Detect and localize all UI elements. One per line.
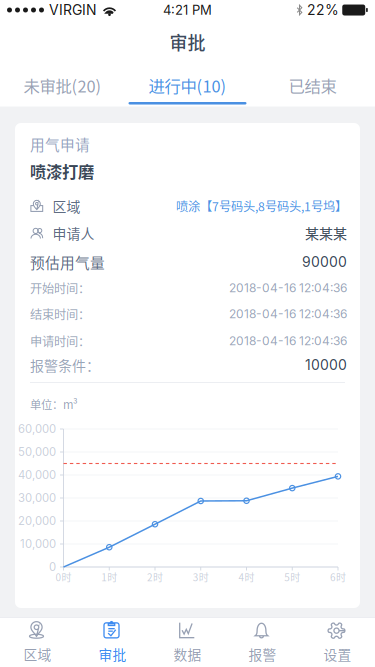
staticText: 3时 — [193, 570, 209, 584]
staticText: 结束时间： — [30, 305, 90, 323]
staticText: 20,000 — [18, 514, 56, 528]
staticText: 60,000 — [18, 422, 56, 436]
staticText: 开始时间： — [30, 279, 90, 297]
staticText: 90000 — [302, 253, 347, 270]
staticText: 申请人 — [52, 223, 94, 243]
button[interactable]: 设置 — [300, 618, 375, 667]
staticText: 单位：m³ — [30, 396, 78, 412]
staticText: 40,000 — [18, 468, 56, 482]
staticText: 设置 — [323, 644, 351, 664]
staticText: 10000 — [305, 356, 347, 373]
staticText: 0 — [49, 560, 56, 574]
staticText: 数据 — [173, 644, 201, 664]
button[interactable]: 数据 — [150, 618, 225, 667]
staticText: 报警 — [248, 644, 276, 664]
button[interactable]: 审批 — [75, 618, 150, 667]
staticText: 用气申请 — [30, 133, 90, 155]
staticText: 2018-04-16 12:04:36 — [229, 334, 347, 348]
staticText: 某某某 — [305, 223, 347, 243]
staticText: 未审批(20) — [23, 73, 101, 97]
staticText: 已结束 — [288, 73, 336, 97]
staticText: VIRGIN — [49, 1, 97, 18]
staticText: 审批 — [98, 644, 126, 664]
staticText: 审批 — [169, 29, 205, 55]
staticText: 2时 — [147, 570, 163, 584]
staticText: 报警条件： — [30, 355, 100, 375]
staticText: 50,000 — [18, 445, 56, 459]
staticText: 喷涂【7号码头,8号码头,1号坞】 — [176, 197, 347, 215]
staticText: 喷漆打磨 — [30, 159, 94, 183]
staticText: 6时 — [330, 570, 346, 584]
staticText: 区域 — [52, 196, 80, 216]
button[interactable]: 已结束 — [250, 64, 375, 106]
staticText: 30,000 — [18, 491, 56, 505]
staticText: 2018-04-16 12:04:36 — [229, 281, 347, 295]
staticText: 预估用气量 — [30, 251, 105, 273]
staticText: 2018-04-16 12:04:36 — [229, 307, 347, 321]
button[interactable]: 未审批(20) — [0, 64, 125, 106]
button[interactable]: 进行中(10) — [125, 64, 250, 106]
staticText: 进行中(10) — [148, 73, 226, 97]
staticText: 区域 — [23, 644, 51, 664]
staticText: 0时 — [55, 570, 71, 584]
staticText: 申请时间： — [30, 332, 90, 350]
button[interactable]: 报警 — [225, 618, 300, 667]
staticText: 4时 — [238, 570, 254, 584]
staticText: 5时 — [284, 570, 300, 584]
button[interactable]: 区域 — [0, 618, 75, 667]
staticText: 22% — [307, 1, 339, 18]
staticText: 4:21 PM — [163, 2, 212, 18]
staticText: 10,000 — [20, 537, 56, 551]
staticText: 1时 — [101, 570, 117, 584]
